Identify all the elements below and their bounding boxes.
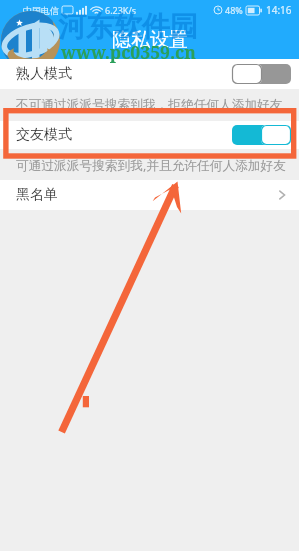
staticText: 熟人模式 (16, 65, 72, 83)
staticText: 不可通过派派号搜索到我，拒绝任何人添加好友 (16, 97, 283, 113)
other: Open (273, 186, 291, 204)
button[interactable]: Switch off (232, 64, 291, 84)
staticText: 可通过派派号搜索到我,并且允许任何人添加好友 (16, 156, 286, 173)
staticText: 6.23K/s (105, 4, 137, 16)
staticText: 交友模式 (16, 126, 72, 144)
staticText: 中国电信 (23, 5, 59, 16)
staticText: 黑名单 (16, 186, 58, 204)
button[interactable]: Switch on (232, 125, 291, 145)
staticText: 48% (225, 4, 243, 16)
button[interactable]: 熟人模式 (0, 59, 299, 89)
button[interactable]: 黑名单 (0, 180, 299, 210)
staticText: 隐私设置 (112, 28, 188, 52)
staticText: www.pc0359.cn (61, 40, 196, 64)
button[interactable]: 交友模式 (0, 121, 299, 149)
staticText: 河东软件园 (58, 9, 198, 44)
staticText: 14:16 (266, 3, 292, 17)
